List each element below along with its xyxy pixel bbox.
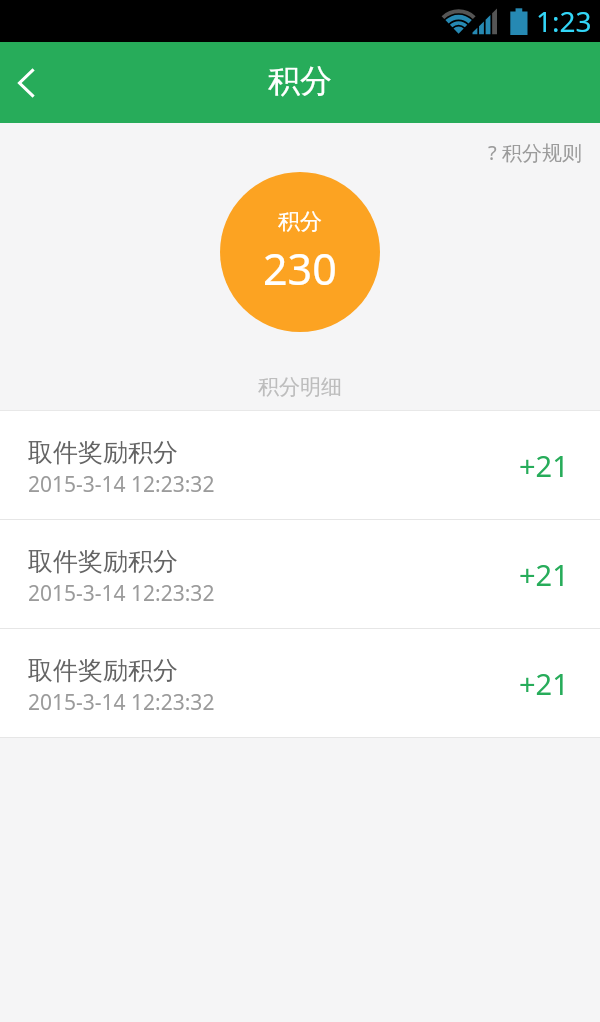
staticText: 2015-3-14 12:23:32 (28, 688, 215, 717)
staticText: 积分明细 (258, 374, 342, 400)
staticText: ? 积分规则 (488, 139, 582, 166)
button[interactable]: ? 积分规则 (488, 123, 600, 166)
staticText: 2015-3-14 12:23:32 (28, 579, 215, 608)
staticText: 1:23 (536, 2, 592, 40)
staticText: 积分 (268, 61, 332, 101)
button[interactable]: 取件奖励积分 (0, 411, 600, 519)
staticText: 230 (263, 239, 337, 298)
button[interactable]: Back (0, 57, 52, 109)
staticText: 取件奖励积分 (28, 546, 178, 577)
button[interactable]: 取件奖励积分 (0, 629, 600, 737)
staticText: 2015-3-14 12:23:32 (28, 470, 215, 499)
staticText: 取件奖励积分 (28, 437, 178, 468)
staticText: 取件奖励积分 (28, 655, 178, 686)
staticText: +21 (519, 664, 569, 703)
button[interactable]: 取件奖励积分 (0, 520, 600, 628)
staticText: +21 (519, 446, 569, 485)
staticText: +21 (519, 555, 569, 594)
staticText: 积分 (278, 208, 322, 236)
